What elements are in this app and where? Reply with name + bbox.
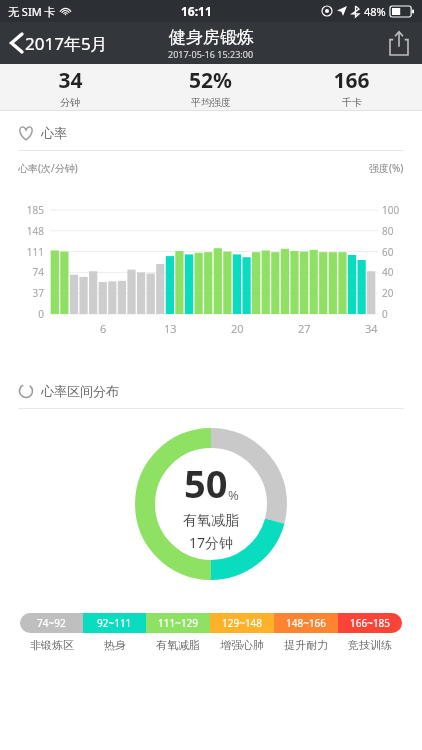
staticText: 0 [382, 307, 388, 321]
staticText: 50 [184, 457, 228, 509]
button[interactable]: Share [376, 22, 422, 64]
button[interactable]: 166~185 [338, 613, 402, 633]
staticText: 竞技训练 [348, 638, 392, 652]
staticText: 强度(%) [369, 161, 404, 175]
staticText: 80 [382, 224, 394, 238]
staticText: 16:11 [181, 3, 212, 19]
staticText: 100 [382, 203, 400, 217]
staticText: 13 [164, 321, 177, 336]
staticText: 有氧减脂 [156, 638, 200, 652]
staticText: 74 [32, 265, 44, 279]
staticText: 48% [364, 4, 386, 19]
staticText: 2017-05-16 15:23:00 [168, 48, 254, 60]
staticText: 185 [26, 203, 44, 217]
staticText: 0 [38, 307, 44, 321]
button[interactable]: 129~148 [210, 613, 274, 633]
staticText: 20 [231, 321, 244, 336]
staticText: 148~166 [286, 616, 327, 630]
staticText: 无 SIM 卡 [8, 4, 56, 19]
staticText: 148 [26, 224, 44, 238]
staticText: 60 [382, 245, 394, 259]
staticText: 92~111 [97, 616, 132, 630]
staticText: 74~92 [37, 616, 66, 630]
staticText: 27 [298, 321, 311, 336]
staticText: 37 [32, 286, 44, 300]
button[interactable]: 2017年5月 [0, 22, 118, 64]
staticText: 111 [26, 245, 44, 259]
staticText: % [228, 486, 239, 504]
staticText: 有氧减脂 [183, 512, 239, 530]
staticText: 千卡 [342, 96, 362, 109]
button[interactable]: 92~111 [83, 613, 146, 633]
staticText: 34 [365, 321, 378, 336]
button[interactable]: 74~92 [20, 613, 83, 633]
staticText: 2017年5月 [25, 32, 108, 55]
staticText: 分钟 [60, 96, 80, 109]
staticText: 健身房锻炼 [169, 27, 254, 48]
staticText: 非锻炼区 [30, 638, 74, 652]
staticText: 111~129 [158, 616, 199, 630]
staticText: 34 [58, 66, 83, 95]
staticText: 心率区间分布 [41, 383, 119, 399]
staticText: 17分钟 [189, 533, 234, 552]
staticText: 52% [189, 66, 232, 95]
staticText: 增强心肺 [220, 638, 264, 652]
staticText: 166 [333, 66, 370, 95]
staticText: 166~185 [350, 616, 391, 630]
staticText: 129~148 [222, 616, 263, 630]
button[interactable]: 111~129 [146, 613, 210, 633]
staticText: 40 [382, 265, 394, 279]
staticText: 心率(次/分钟) [18, 161, 78, 175]
staticText: 热身 [104, 638, 126, 652]
staticText: 平均强度 [191, 96, 231, 109]
staticText: 心率 [41, 125, 67, 141]
staticText: 提升耐力 [284, 638, 328, 652]
button[interactable]: 148~166 [274, 613, 338, 633]
staticText: 20 [382, 286, 394, 300]
staticText: 6 [100, 321, 107, 336]
